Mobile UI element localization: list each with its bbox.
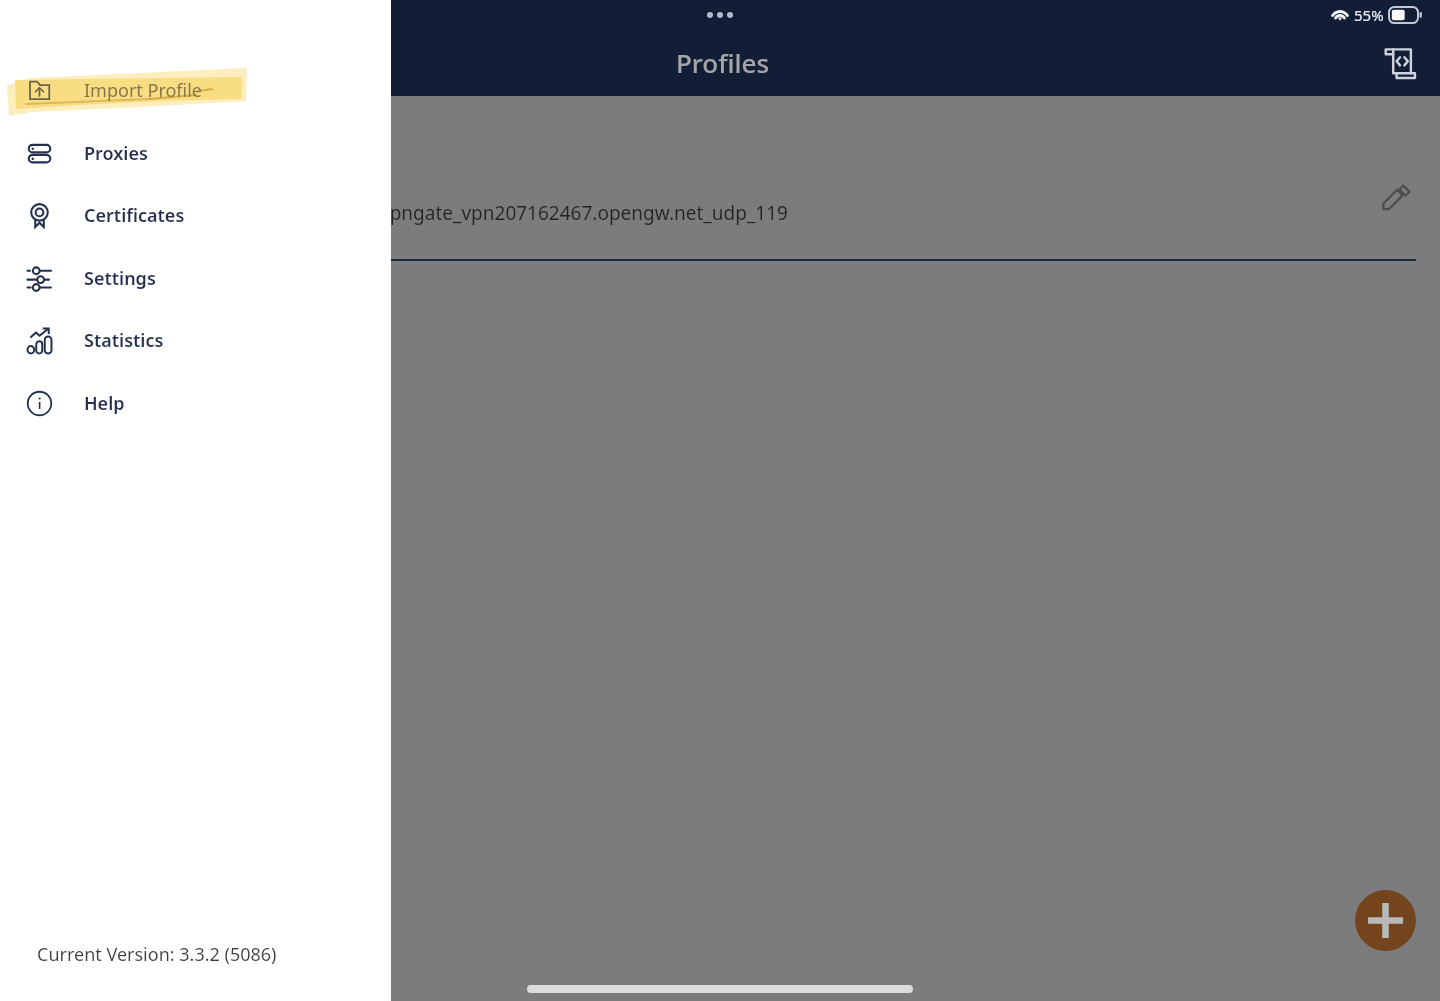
staticText: vpngate_vpn207162467.opengw.net_udp_119 [380,200,788,226]
staticText: Certificates [84,203,185,228]
button[interactable]: Import Profile [0,59,391,121]
button[interactable]: Statistics [0,309,391,371]
button[interactable]: Settings [0,247,391,309]
staticText: Profiles [676,45,770,80]
staticText: Help [84,391,125,416]
button[interactable]: View script [1376,39,1424,87]
button[interactable]: Certificates [0,184,391,246]
staticText: Statistics [84,328,164,353]
staticText: Proxies [84,141,148,166]
staticText: Import Profile [84,78,202,103]
button[interactable]: Edit profile [1371,173,1421,223]
staticText: Current Version: 3.3.2 (5086) [37,942,277,967]
button[interactable]: Help [0,372,391,434]
staticText: 55% [1354,5,1384,25]
staticText: Settings [84,266,156,291]
button[interactable]: vpngate_vpn207162467.opengw.net_udp_119 [0,162,1440,260]
button[interactable]: Proxies [0,122,391,184]
button[interactable]: Add profile [1355,890,1416,951]
